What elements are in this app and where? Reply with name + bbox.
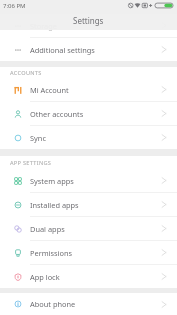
staticText: Installed apps bbox=[30, 200, 79, 210]
staticText: Mi Account bbox=[30, 85, 69, 95]
staticText: Dual apps bbox=[30, 224, 65, 234]
button[interactable]: System apps bbox=[0, 169, 177, 192]
button[interactable]: Other accounts bbox=[0, 102, 177, 125]
staticText: 7:06 PM bbox=[3, 2, 26, 10]
staticText: ACCOUNTS bbox=[10, 69, 42, 77]
staticText: App lock bbox=[30, 272, 60, 282]
staticText: Permissions bbox=[30, 248, 73, 258]
staticText: APP SETTINGS bbox=[10, 159, 52, 167]
button[interactable]: About phone bbox=[0, 293, 177, 315]
staticText: Other accounts bbox=[30, 109, 84, 119]
button[interactable]: Dual apps bbox=[0, 217, 177, 240]
staticText: System apps bbox=[30, 176, 74, 186]
staticText: Additional settings bbox=[30, 45, 95, 55]
button[interactable]: Sync bbox=[0, 126, 177, 149]
button[interactable]: Permissions bbox=[0, 241, 177, 264]
staticText: Storage bbox=[30, 21, 57, 31]
staticText: Sync bbox=[30, 133, 46, 143]
button[interactable]: Installed apps bbox=[0, 193, 177, 216]
staticText: About phone bbox=[30, 299, 76, 309]
button[interactable]: Mi Account bbox=[0, 78, 177, 101]
button[interactable]: Additional settings bbox=[0, 38, 177, 61]
button[interactable]: Storage bbox=[0, 14, 177, 37]
button[interactable]: App lock bbox=[0, 265, 177, 288]
staticText: Settings bbox=[73, 15, 104, 26]
